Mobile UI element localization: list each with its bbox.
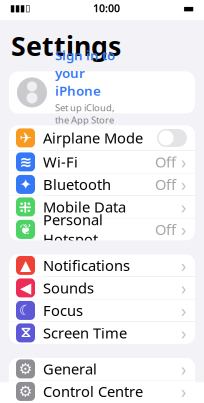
button[interactable]: ≋ (9, 151, 195, 173)
staticText: ▲ (20, 257, 31, 274)
staticText: Focus (43, 301, 83, 320)
staticText: › (181, 357, 186, 380)
staticText: Personal Hotspot (43, 210, 103, 249)
staticText: General (43, 359, 97, 379)
staticText: › (181, 254, 186, 277)
staticText: ✦ (19, 176, 31, 193)
staticText: Off (155, 175, 176, 194)
button[interactable]: ⧖ (9, 322, 195, 344)
button[interactable]: ▲ (9, 254, 195, 277)
button[interactable]: ⚙ (9, 358, 195, 380)
staticText: Screen Time (43, 323, 127, 343)
staticText: › (181, 195, 186, 218)
staticText: Mobile Data (43, 197, 126, 217)
staticText: ⧖ (20, 326, 30, 340)
staticText: Wi-Fi (43, 152, 78, 172)
button[interactable]: ⁜ (9, 196, 195, 218)
staticText: ❦ (19, 221, 31, 238)
staticText: ⁜ (19, 197, 32, 217)
staticText: › (181, 276, 186, 299)
staticText: Settings (11, 28, 121, 63)
staticText: Set up iCloud, the App Store and more. (55, 101, 115, 139)
staticText: Control Centre (43, 382, 143, 401)
staticText: › (181, 299, 186, 322)
button[interactable]: ✦ (9, 173, 195, 196)
staticText: › (181, 380, 186, 403)
staticText: ✈ (19, 130, 31, 146)
staticText: ☾ (19, 302, 32, 319)
staticText: Sounds (43, 278, 94, 298)
button[interactable]: ⚙ (9, 380, 195, 402)
staticText: Bluetooth (43, 175, 111, 194)
staticText: Off (155, 152, 176, 172)
button[interactable]: ☾ (9, 299, 195, 322)
button[interactable]: ✈ (9, 125, 195, 151)
staticText: Airplane Mode (43, 128, 143, 148)
button[interactable]: ◀ (9, 277, 195, 299)
staticText: ⚙ (19, 383, 32, 400)
staticText: › (181, 321, 186, 344)
button[interactable]: ❦ (9, 218, 195, 240)
staticText: Sign in to your iPhone (55, 46, 115, 99)
staticText: › (181, 150, 186, 173)
staticText: › (181, 218, 186, 241)
staticText: ≋ (19, 154, 31, 170)
staticText: Off (155, 220, 176, 239)
button[interactable]: Sign in to your iPhone (9, 71, 195, 113)
staticText: ◀ (20, 280, 31, 296)
staticText: › (181, 173, 186, 196)
staticText: ⚙ (19, 361, 32, 377)
staticText: Notifications (43, 256, 130, 275)
